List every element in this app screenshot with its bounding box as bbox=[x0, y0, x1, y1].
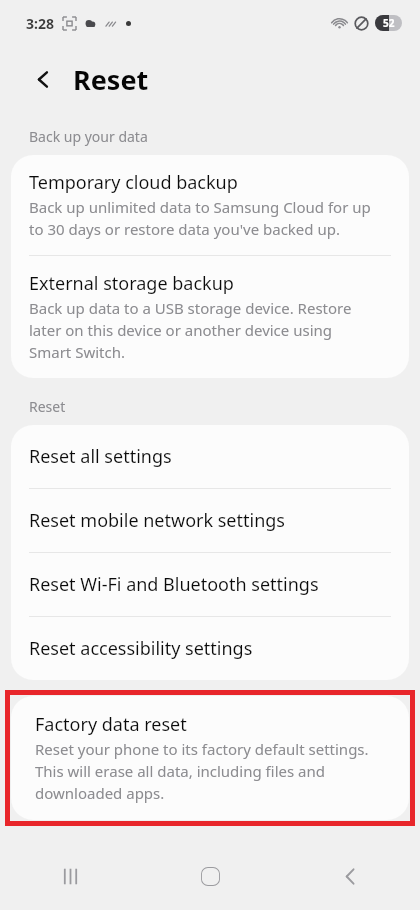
button[interactable]: Back bbox=[22, 58, 64, 100]
staticText: 3:28 bbox=[26, 14, 54, 33]
staticText: Reset bbox=[73, 61, 149, 98]
button[interactable]: Back bbox=[322, 848, 378, 904]
button[interactable]: Temporary cloud backup bbox=[11, 155, 409, 255]
button[interactable]: External storage backup bbox=[11, 256, 409, 378]
staticText: Reset all settings bbox=[29, 444, 172, 469]
staticText: External storage backup bbox=[29, 271, 234, 296]
staticText: Reset mobile network settings bbox=[29, 508, 285, 533]
staticText: Temporary cloud backup bbox=[29, 170, 238, 195]
staticText: Reset accessibility settings bbox=[29, 636, 253, 661]
button[interactable]: Factory data reset bbox=[11, 696, 409, 820]
button[interactable]: Reset accessibility settings bbox=[11, 617, 409, 680]
staticText: Back up your data bbox=[29, 127, 148, 146]
button[interactable]: Home bbox=[182, 848, 238, 904]
button[interactable]: Recent apps bbox=[42, 848, 98, 904]
button[interactable]: Reset mobile network settings bbox=[11, 489, 409, 552]
button[interactable]: Reset all settings bbox=[11, 425, 409, 488]
staticText: Reset your phone to its factory default … bbox=[35, 739, 369, 804]
staticText: Back up data to a USB storage device. Re… bbox=[29, 298, 352, 363]
staticText: Reset Wi-Fi and Bluetooth settings bbox=[29, 572, 319, 597]
staticText: Reset bbox=[29, 397, 66, 416]
staticText: Factory data reset bbox=[35, 712, 187, 737]
staticText: 52 bbox=[383, 16, 395, 30]
staticText: Back up unlimited data to Samsung Cloud … bbox=[29, 197, 371, 240]
button[interactable]: Reset Wi-Fi and Bluetooth settings bbox=[11, 553, 409, 616]
